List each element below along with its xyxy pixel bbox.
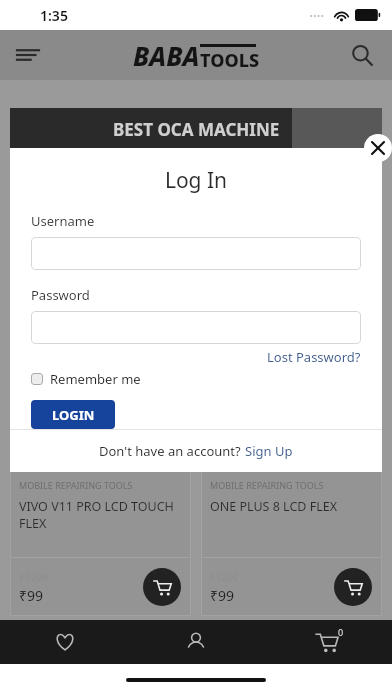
staticText: Log In bbox=[10, 166, 382, 195]
button[interactable]: Lost Password? bbox=[267, 348, 361, 366]
staticText: ₹99 bbox=[210, 586, 235, 605]
staticText: IN BABA TOOLS bbox=[131, 145, 262, 168]
button[interactable] bbox=[31, 311, 361, 344]
staticText: ONE PLUS 8 LCD FLEX bbox=[210, 498, 337, 515]
staticText: Remember me bbox=[50, 370, 141, 388]
staticText: 0 bbox=[338, 626, 344, 638]
button[interactable]: Cart bbox=[261, 620, 392, 664]
staticText: LOGIN bbox=[52, 406, 95, 424]
button[interactable]: Add to cart bbox=[334, 568, 372, 606]
staticText: VIVO V11 PRO LCD TOUCH FLEX bbox=[19, 498, 182, 532]
button[interactable]: V11 PRO bbox=[10, 441, 191, 616]
staticText: BEST OCA MACHINE bbox=[113, 118, 280, 141]
button[interactable]: 8 bbox=[201, 441, 382, 616]
staticText: ₹99 bbox=[19, 586, 44, 605]
button[interactable]: Search bbox=[340, 33, 384, 77]
staticText: Don't have an account? bbox=[99, 442, 245, 460]
button[interactable]: Wishlist bbox=[0, 620, 130, 664]
button[interactable]: Close bbox=[364, 134, 392, 162]
button[interactable]: Sign Up bbox=[245, 442, 293, 460]
staticText: TOOLS bbox=[200, 48, 260, 73]
button[interactable]: LOGIN bbox=[31, 400, 115, 429]
button[interactable]: Remember me bbox=[31, 370, 141, 388]
button[interactable]: Add to cart bbox=[143, 568, 181, 606]
staticText: Password bbox=[31, 286, 90, 304]
button[interactable]: Account bbox=[130, 620, 261, 664]
staticText: BABA bbox=[133, 38, 200, 73]
staticText: Username bbox=[31, 212, 95, 230]
staticText: MOBILE REPAIRING TOOLS bbox=[210, 479, 324, 491]
button[interactable] bbox=[31, 237, 361, 270]
staticText: MOBILE REPAIRING TOOLS bbox=[19, 479, 133, 491]
staticText: 1:35 bbox=[40, 6, 68, 25]
button[interactable]: Menu bbox=[6, 33, 50, 77]
